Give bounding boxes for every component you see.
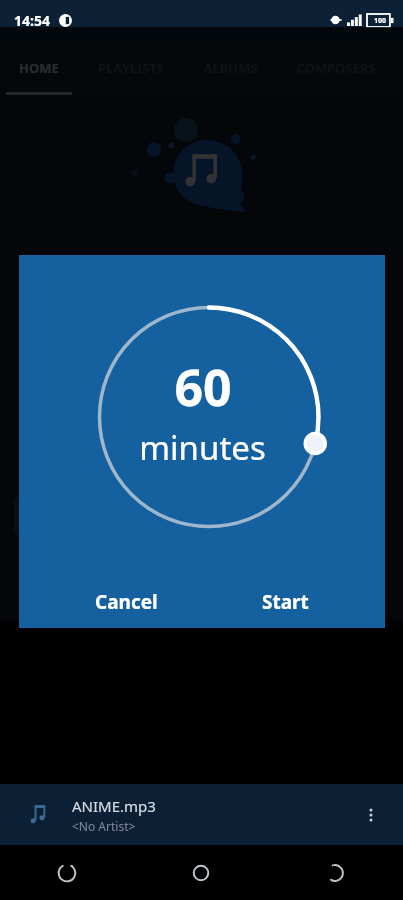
staticText: Start (262, 589, 309, 615)
button[interactable]: Back (268, 845, 402, 900)
button[interactable]: ANIME.mp3 (0, 784, 403, 845)
staticText: Rate app (74, 505, 145, 528)
staticText: <No Artist> (72, 818, 136, 834)
button[interactable]: HOME (0, 40, 78, 95)
staticText: Cancel (95, 589, 158, 615)
staticText: HOME (19, 59, 59, 77)
staticText: 60 (174, 353, 232, 421)
staticText: ANIME.mp3 (72, 796, 156, 816)
staticText: ALBUMS (203, 59, 258, 77)
staticText: PLAYLISTS (98, 59, 164, 77)
staticText: 100 (374, 16, 387, 26)
staticText: minutes (139, 425, 266, 470)
button[interactable]: Recents (0, 845, 134, 900)
button[interactable]: Start (262, 589, 309, 615)
button[interactable]: Rate app (0, 488, 403, 544)
button[interactable]: More options (347, 791, 395, 839)
button[interactable]: Home (134, 845, 268, 900)
staticText: 14:54 (14, 11, 50, 30)
staticText: COMPOSERS (296, 59, 376, 77)
button[interactable]: Cancel (95, 589, 158, 615)
